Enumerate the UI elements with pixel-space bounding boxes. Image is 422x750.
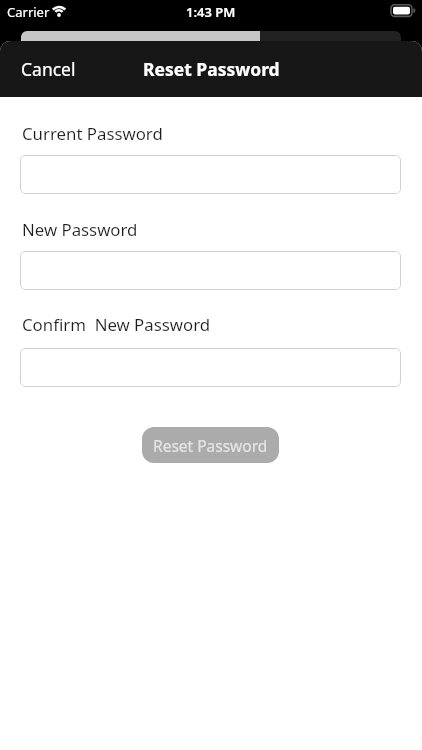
button[interactable]: [20, 155, 401, 194]
staticText: New Password: [22, 218, 138, 241]
staticText: Reset Password: [153, 435, 268, 456]
staticText: Confirm New Password: [22, 313, 211, 336]
button[interactable]: [20, 348, 401, 387]
staticText: Cancel: [21, 57, 76, 81]
staticText: 1:43 PM: [186, 3, 236, 21]
button[interactable]: Cancel: [0, 49, 88, 89]
button[interactable]: [20, 251, 401, 290]
button[interactable]: Reset Password: [142, 427, 279, 463]
staticText: Carrier: [7, 3, 50, 21]
staticText: Current Password: [22, 122, 163, 145]
staticText: Reset Password: [143, 57, 280, 81]
